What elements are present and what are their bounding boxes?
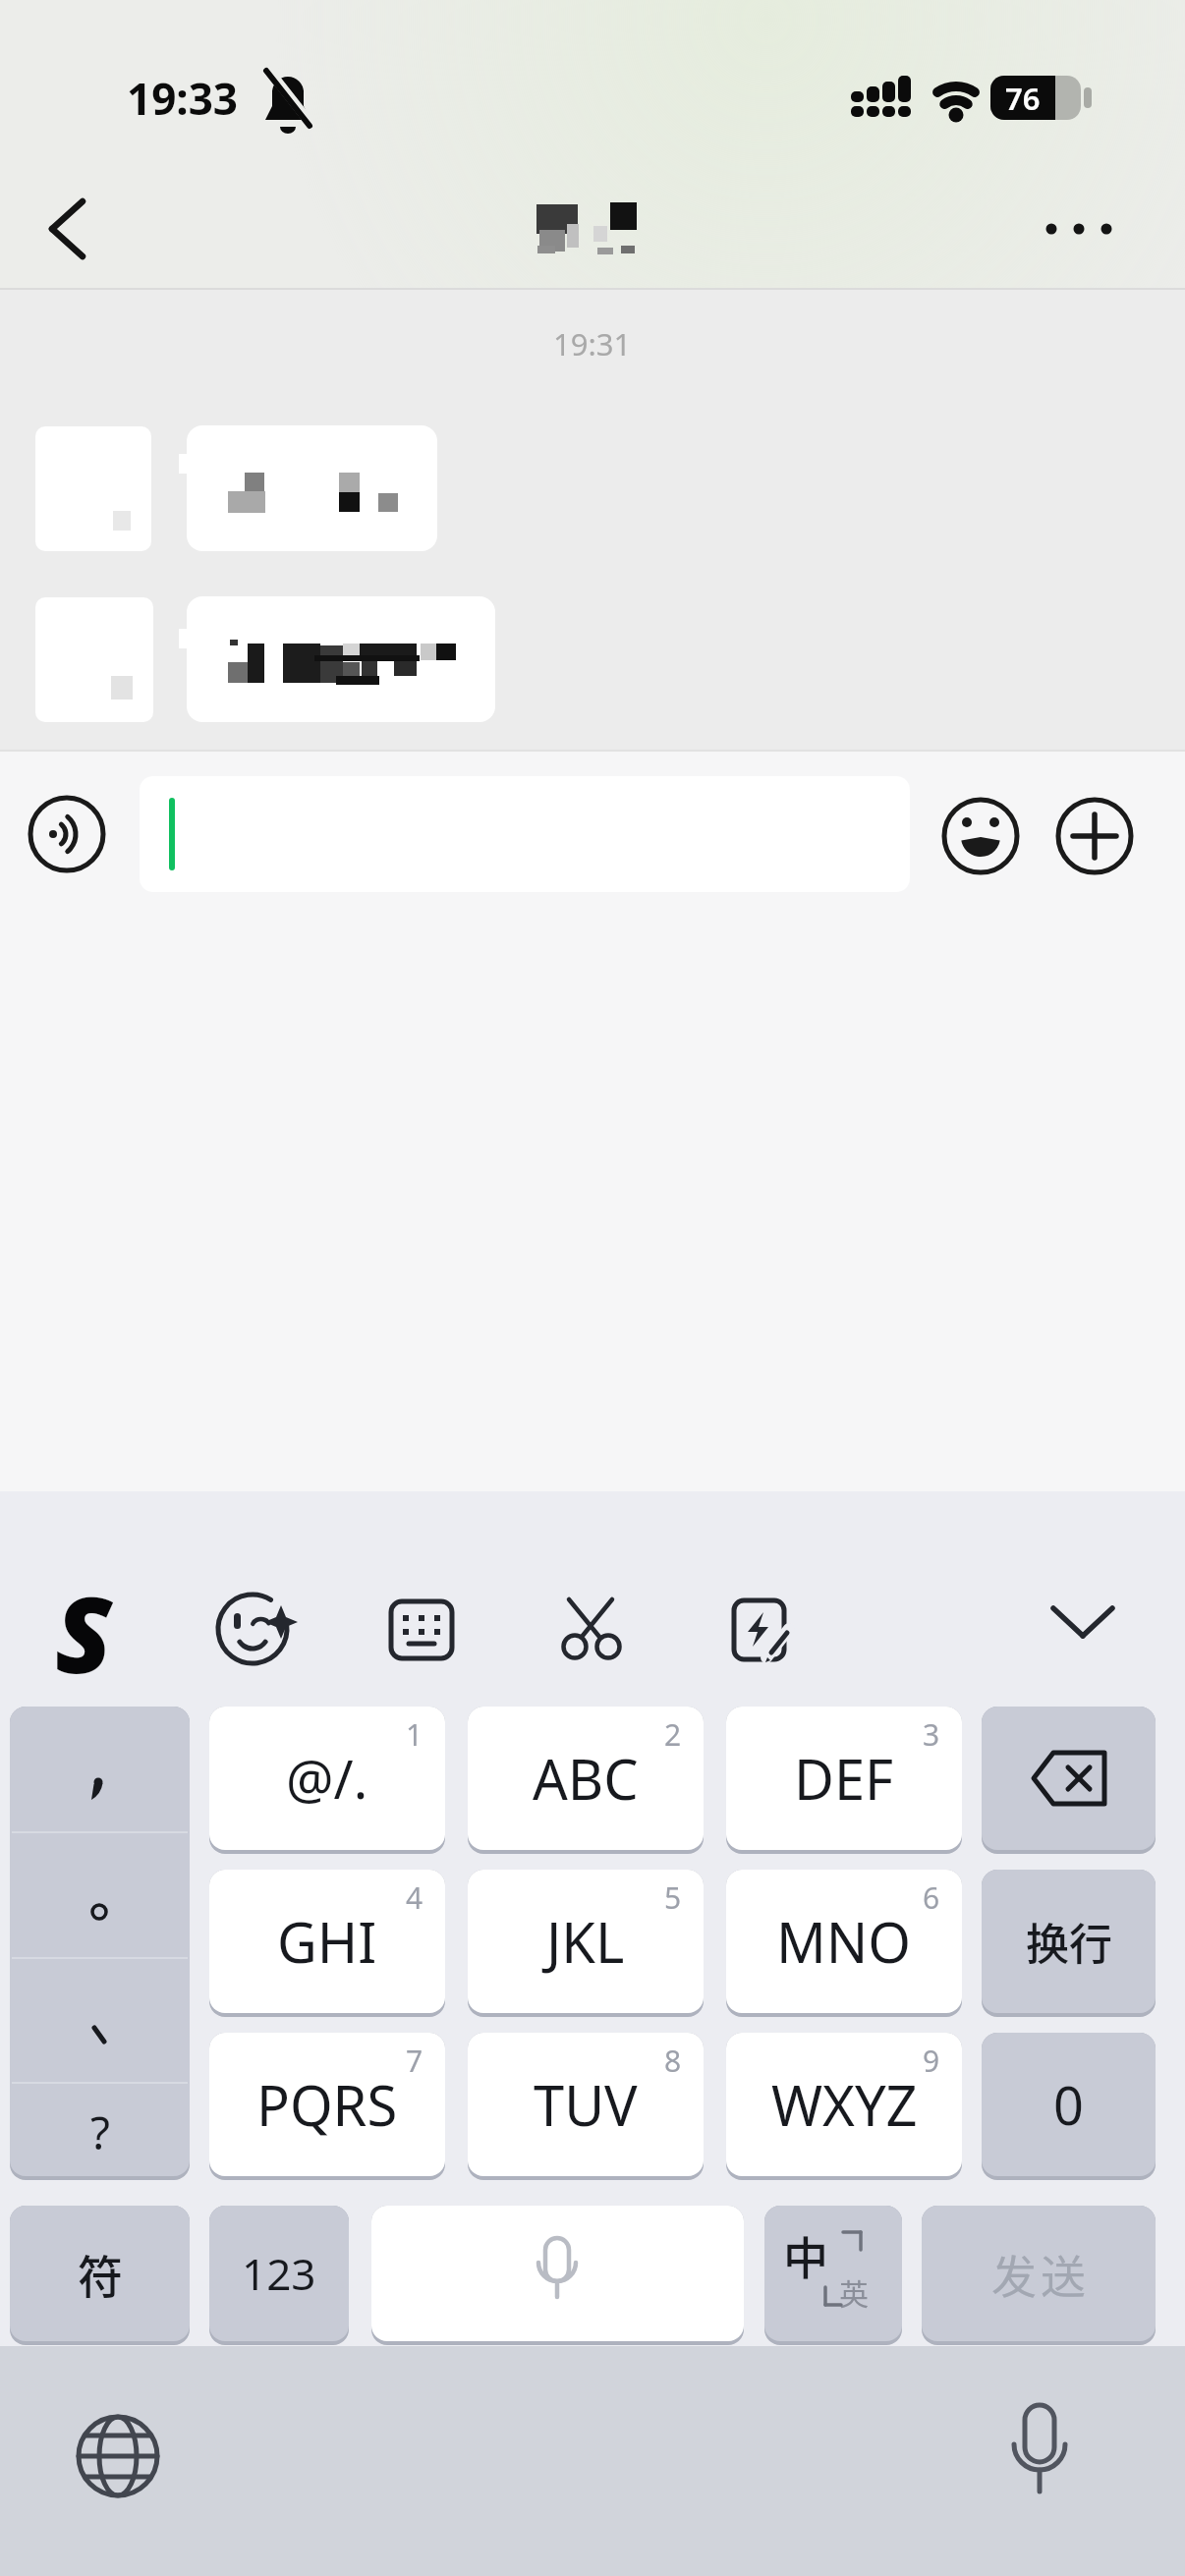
- staticText: 中: [783, 2222, 828, 2281]
- button[interactable]: [540, 1584, 629, 1666]
- button[interactable]: [1055, 798, 1134, 876]
- button[interactable]: [39, 1568, 138, 1670]
- staticText: WXYZ: [771, 2067, 918, 2142]
- staticText: 7: [406, 2041, 423, 2081]
- staticText: 1: [406, 1714, 423, 1755]
- staticText: ?: [90, 2101, 110, 2163]
- button[interactable]: [371, 2206, 744, 2341]
- button[interactable]: [705, 1584, 794, 1666]
- button[interactable]: [35, 426, 151, 551]
- button[interactable]: [990, 2399, 1089, 2497]
- staticText: @/.: [286, 1742, 368, 1815]
- staticText: 换行: [1026, 1910, 1112, 1973]
- button[interactable]: [28, 796, 106, 874]
- staticText: 英: [839, 2270, 869, 2313]
- button[interactable]: @/.: [209, 1707, 445, 1850]
- staticText: DEF: [794, 1741, 894, 1816]
- staticText: 9: [923, 2041, 940, 2081]
- staticText: 19:31: [553, 323, 632, 364]
- button[interactable]: 123: [209, 2206, 349, 2341]
- button[interactable]: [1042, 1584, 1130, 1666]
- button[interactable]: [10, 1707, 190, 2176]
- staticText: GHI: [277, 1904, 377, 1979]
- staticText: 2: [664, 1714, 682, 1755]
- button[interactable]: TUV: [468, 2033, 704, 2176]
- button[interactable]: 0: [982, 2033, 1156, 2176]
- staticText: 符: [78, 2241, 123, 2307]
- staticText: 5: [664, 1877, 682, 1918]
- button[interactable]: [373, 1584, 462, 1666]
- staticText: MNO: [776, 1904, 912, 1979]
- button[interactable]: 发送: [922, 2206, 1156, 2341]
- button[interactable]: [764, 2206, 902, 2341]
- staticText: 6: [923, 1877, 940, 1918]
- staticText: 0: [1053, 2068, 1084, 2141]
- staticText: TUV: [534, 2067, 638, 2142]
- staticText: 4: [406, 1877, 423, 1918]
- staticText: 发送: [989, 2241, 1088, 2307]
- button[interactable]: MNO: [726, 1870, 962, 2013]
- button[interactable]: [982, 1707, 1156, 1850]
- button[interactable]: GHI: [209, 1870, 445, 2013]
- staticText: 19:33: [127, 69, 239, 126]
- button[interactable]: [941, 798, 1020, 876]
- staticText: ABC: [533, 1741, 639, 1816]
- button[interactable]: PQRS: [209, 2033, 445, 2176]
- staticText: JKL: [546, 1904, 625, 1979]
- button[interactable]: ABC: [468, 1707, 704, 1850]
- staticText: 76: [1005, 78, 1041, 119]
- button[interactable]: [1032, 196, 1130, 265]
- staticText: 3: [923, 1714, 940, 1755]
- button[interactable]: [28, 196, 106, 265]
- button[interactable]: [35, 597, 153, 722]
- button[interactable]: [140, 776, 910, 892]
- button[interactable]: 符: [10, 2206, 190, 2341]
- button[interactable]: DEF: [726, 1707, 962, 1850]
- button[interactable]: [206, 1584, 295, 1666]
- button[interactable]: [187, 596, 495, 722]
- staticText: PQRS: [256, 2067, 398, 2142]
- button[interactable]: 换行: [982, 1870, 1156, 2013]
- staticText: 123: [242, 2244, 316, 2303]
- button[interactable]: JKL: [468, 1870, 704, 2013]
- button[interactable]: [187, 425, 437, 551]
- staticText: 8: [664, 2041, 682, 2081]
- button[interactable]: [69, 2407, 167, 2505]
- button[interactable]: WXYZ: [726, 2033, 962, 2176]
- staticText: S: [55, 1562, 113, 1680]
